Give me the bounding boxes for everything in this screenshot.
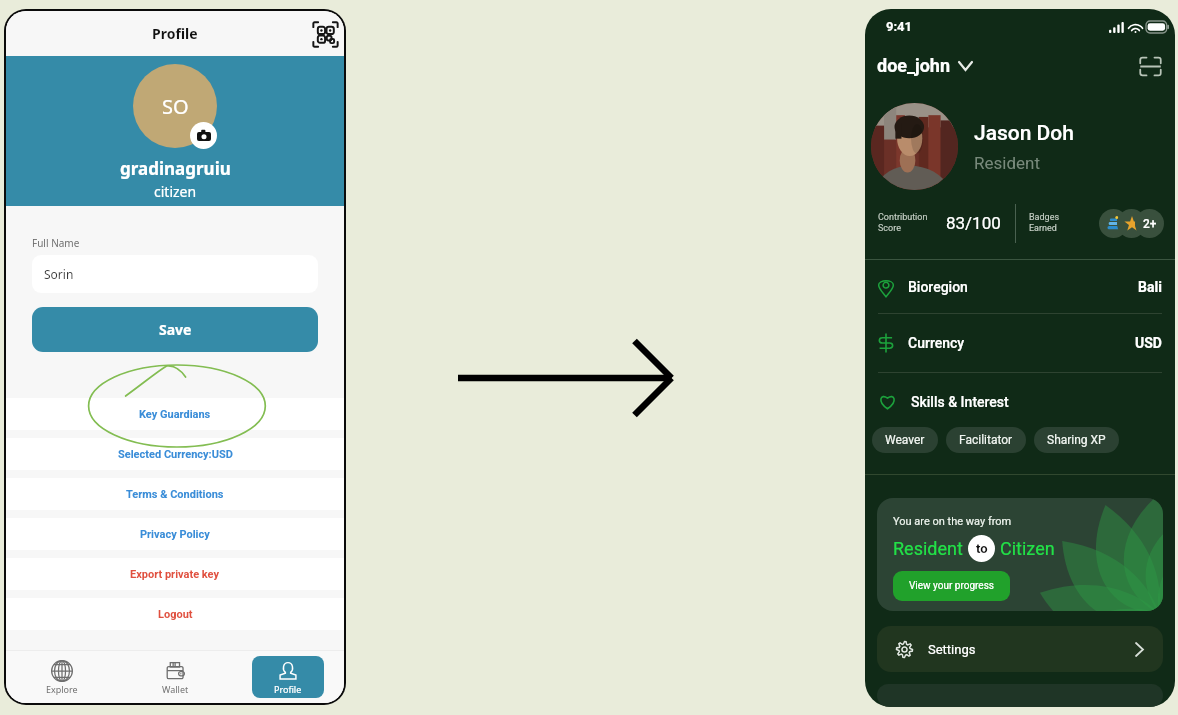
staticText: Weaver	[885, 433, 925, 447]
staticText: citizen	[154, 182, 197, 201]
button[interactable]: Wallet	[139, 656, 211, 698]
staticText: Bali	[1138, 279, 1162, 295]
staticText: USD	[1135, 335, 1162, 351]
staticText: Sharing XP	[1047, 433, 1106, 447]
staticText: Selected Currency:USD	[118, 448, 233, 461]
staticText: Terms & Conditions	[126, 488, 224, 501]
button[interactable]: Export private key	[6, 558, 344, 590]
staticText: Export private key	[130, 568, 220, 581]
staticText: Sorin	[44, 266, 74, 282]
staticText: Wallet	[162, 683, 189, 695]
button[interactable]: You are on the way from	[877, 498, 1163, 611]
button[interactable]: Scan code	[1136, 52, 1164, 80]
staticText: Currency	[908, 335, 965, 351]
button[interactable]: Explore	[26, 656, 98, 698]
button[interactable]: Scan QR code	[310, 19, 340, 49]
button[interactable]: Sharing XP	[1034, 427, 1119, 453]
staticText: You are on the way from	[893, 515, 1012, 528]
staticText: Resident	[893, 538, 963, 559]
button[interactable]: Bioregion	[865, 260, 1175, 313]
button[interactable]: Currency	[865, 314, 1175, 372]
staticText: Score	[878, 223, 901, 234]
staticText: View your progress	[909, 580, 994, 592]
staticText: Earned	[1029, 223, 1057, 234]
staticText: Save	[159, 320, 192, 339]
button[interactable]: Privacy Policy	[6, 518, 344, 550]
staticText: Skills & Interest	[911, 394, 1009, 410]
staticText: Contribution	[878, 212, 928, 223]
staticText: gradinagruiu	[120, 157, 231, 180]
staticText: Jason Doh	[974, 121, 1074, 146]
staticText: Badges	[1029, 212, 1060, 223]
staticText: Explore	[46, 683, 78, 695]
button[interactable]: View your progress	[893, 571, 1010, 601]
staticText: doe_john	[877, 55, 951, 76]
button[interactable]: Logout	[6, 598, 344, 630]
button[interactable]: Key Guardians	[6, 398, 344, 430]
staticText: SO	[162, 93, 189, 120]
button[interactable]: doe_john	[877, 55, 972, 76]
staticText: 2+	[1143, 217, 1157, 231]
button[interactable]: Save	[32, 307, 318, 352]
button[interactable]: Profile	[252, 656, 324, 698]
button[interactable]: Settings	[877, 626, 1163, 672]
button[interactable]: Weaver	[872, 427, 938, 453]
staticText: Key Guardians	[139, 408, 211, 421]
button[interactable]: Change profile photo	[190, 122, 217, 149]
staticText: Settings	[928, 642, 976, 657]
button[interactable]: Facilitator	[946, 427, 1026, 453]
button[interactable]: Selected Currency:USD	[6, 438, 344, 470]
button[interactable]: Sorin	[32, 255, 318, 293]
staticText: to	[976, 541, 988, 556]
staticText: Profile	[152, 24, 198, 43]
staticText: 83/100	[946, 213, 1001, 233]
staticText: Privacy Policy	[140, 528, 210, 541]
staticText: Bioregion	[908, 279, 968, 295]
staticText: Resident	[974, 153, 1040, 173]
staticText: 9:41	[886, 19, 913, 34]
staticText: Logout	[158, 608, 193, 621]
staticText: Full Name	[32, 236, 80, 250]
staticText: Facilitator	[959, 433, 1013, 447]
staticText: Profile	[274, 683, 302, 695]
button[interactable]: Terms & Conditions	[6, 478, 344, 510]
staticText: Citizen	[1000, 538, 1055, 559]
